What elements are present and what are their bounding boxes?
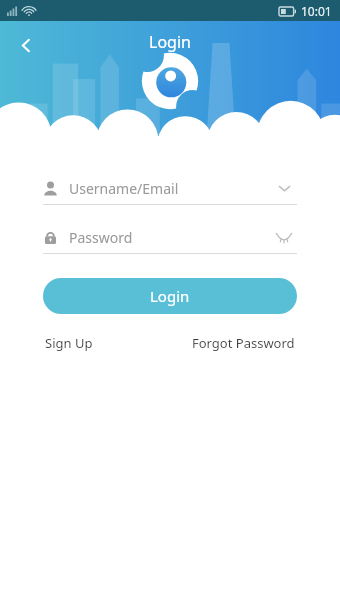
button[interactable]: Password [43, 221, 297, 254]
button[interactable]: Show saved accounts [271, 175, 297, 201]
button[interactable]: Show password [271, 224, 297, 250]
staticText: Forgot Password [192, 334, 295, 352]
button[interactable]: Sign Up [45, 330, 93, 356]
staticText: Login [150, 286, 190, 306]
button[interactable]: Username/Email [43, 172, 297, 205]
button[interactable]: Forgot Password [192, 330, 295, 356]
staticText: 10:01 [301, 3, 332, 19]
button[interactable]: Login [43, 278, 297, 314]
staticText: Password [69, 228, 271, 247]
staticText: Sign Up [45, 334, 93, 352]
button[interactable]: Back [8, 27, 44, 63]
staticText: Login [149, 31, 191, 53]
staticText: Username/Email [69, 179, 271, 198]
